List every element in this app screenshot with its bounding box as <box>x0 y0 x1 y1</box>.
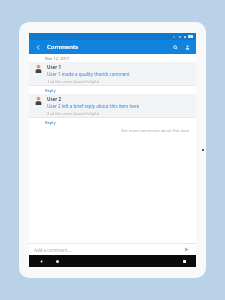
staticText: User 2 left a brief reply about this ite… <box>47 103 140 109</box>
button[interactable]: Reply <box>45 86 196 94</box>
staticText: User 2 <box>47 96 62 102</box>
staticText: Comments <box>47 43 79 51</box>
button[interactable]: Add a comment… <box>34 244 182 255</box>
staticText: Add a comment… <box>34 247 72 253</box>
staticText: See more comments about this item <box>121 128 190 133</box>
button[interactable]: Search <box>170 42 180 52</box>
button[interactable]: Back <box>36 256 46 266</box>
button[interactable]: Recent apps <box>179 256 189 266</box>
button[interactable]: See more comments about this item <box>29 126 190 135</box>
staticText: Mar 12, 2017 <box>45 56 70 61</box>
staticText: User 1 made a quality thumb comment <box>47 71 130 77</box>
button[interactable]: User 2 <box>34 96 190 116</box>
staticText: 2 of the users found helpful <box>47 111 99 116</box>
button[interactable]: Send <box>182 245 191 254</box>
staticText: User 1 <box>47 64 62 70</box>
button[interactable]: Share <box>182 42 192 52</box>
staticText: 1 of the users found helpful <box>47 79 99 84</box>
staticText: Reply <box>45 120 56 125</box>
button[interactable]: Navigate back <box>33 42 43 52</box>
button[interactable]: Home <box>52 256 62 266</box>
button[interactable]: User 1 <box>34 64 190 84</box>
staticText: Reply <box>45 88 56 93</box>
button[interactable]: Reply <box>45 118 196 126</box>
